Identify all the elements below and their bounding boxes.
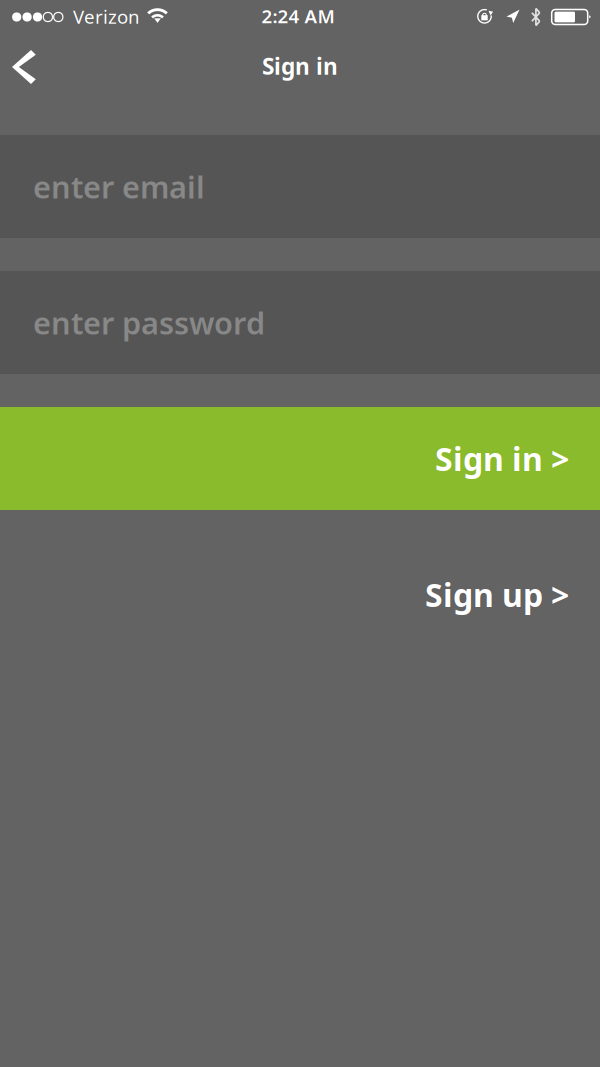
button[interactable]: enter password [0,271,600,374]
staticText: Sign in > [435,437,569,480]
button[interactable]: enter email [0,135,600,238]
staticText: Verizon [73,4,140,29]
staticText: Sign in [262,51,338,81]
staticText: Sign up > [425,573,569,616]
staticText: enter email [33,166,205,207]
staticText: enter password [33,302,265,343]
button[interactable]: Sign up > [0,543,600,646]
button[interactable]: Sign in > [0,407,600,510]
button[interactable]: Back [0,40,48,92]
staticText: 2:24 AM [261,3,334,28]
